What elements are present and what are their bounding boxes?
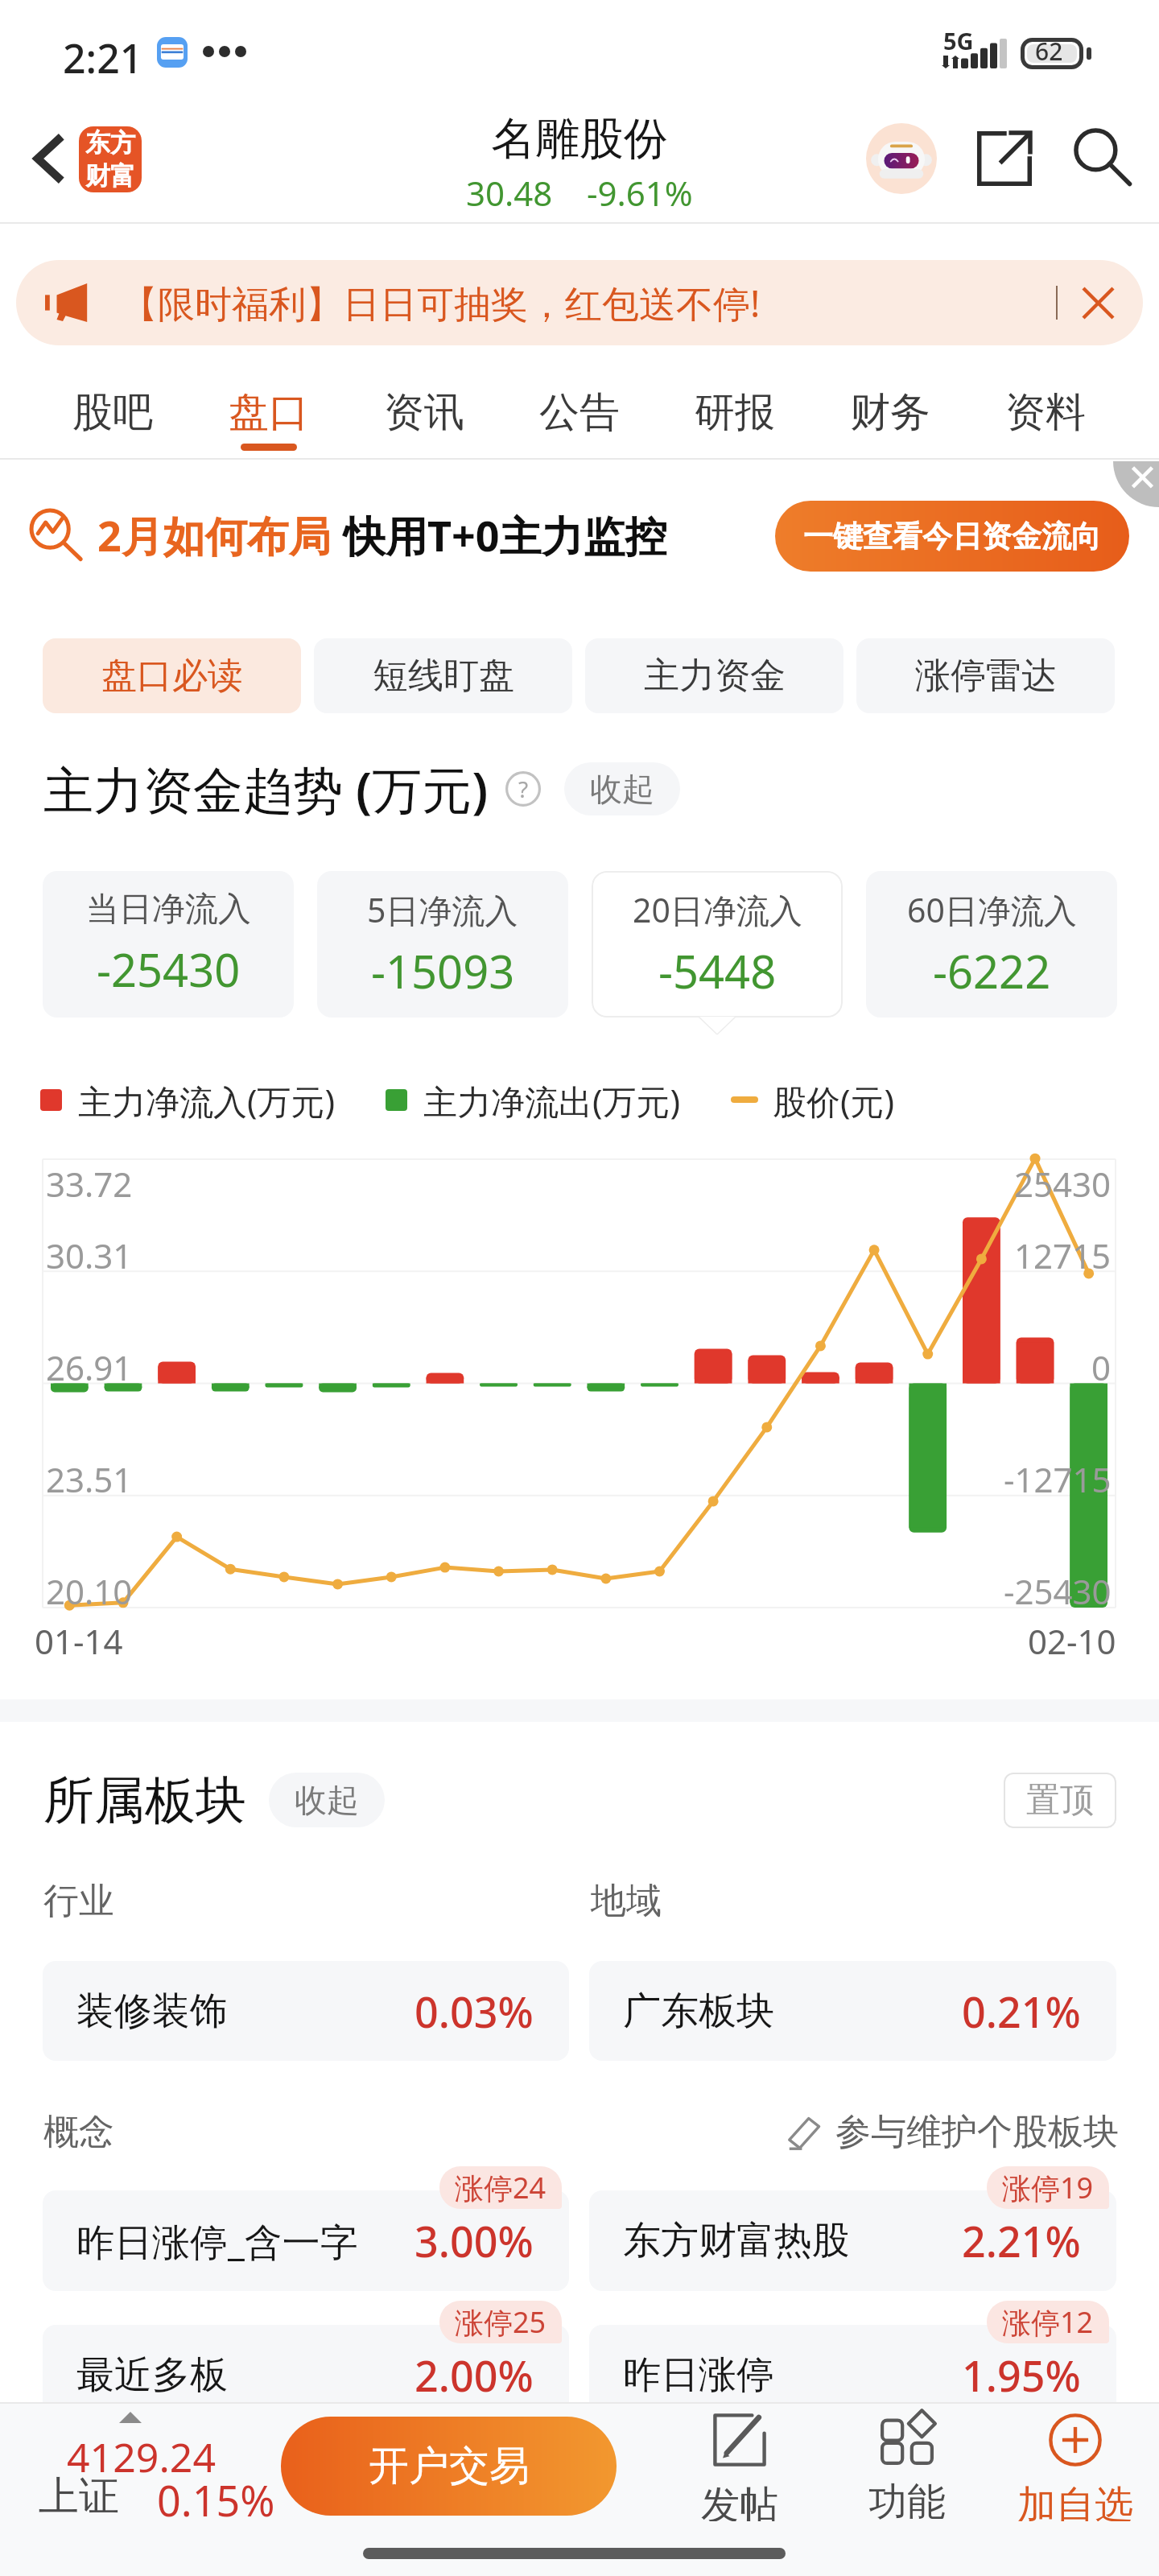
- button[interactable]: 盘口必读: [43, 638, 301, 713]
- staticText: 资料: [1005, 387, 1086, 438]
- button[interactable]: Close ad: [1113, 461, 1159, 507]
- button[interactable]: 置顶: [1004, 1773, 1116, 1828]
- staticText: 名雕股份: [491, 111, 668, 167]
- staticText: 30.31: [46, 1232, 133, 1278]
- button[interactable]: Search: [1063, 118, 1144, 198]
- staticText: 涨停19: [1002, 2168, 1094, 2207]
- staticText: 33.72: [46, 1161, 133, 1207]
- staticText: -15093: [371, 940, 515, 1001]
- staticText: 参与维护个股板块: [835, 2110, 1119, 2154]
- staticText: 概念: [43, 2110, 114, 2154]
- staticText: 装修装饰: [76, 1988, 228, 2035]
- button[interactable]: 开户交易: [281, 2417, 617, 2516]
- button[interactable]: 5日净流入: [317, 871, 568, 1018]
- button[interactable]: 股吧: [35, 360, 191, 460]
- button[interactable]: 一键查看今日资金流向: [775, 501, 1129, 572]
- button[interactable]: 资讯: [346, 360, 501, 460]
- staticText: 财富: [85, 160, 135, 192]
- button[interactable]: 发帖: [663, 2412, 816, 2521]
- staticText: 0.15%: [157, 2471, 275, 2529]
- staticText: 最近多板: [76, 2351, 228, 2399]
- staticText: 20.10: [46, 1568, 133, 1614]
- staticText: 02-10: [1028, 1618, 1116, 1664]
- staticText: 0.03%: [415, 1983, 534, 2040]
- button[interactable]: 【限时福利】日日可抽奖，红包送不停!: [16, 260, 1143, 345]
- staticText: 所属板块: [43, 1769, 246, 1832]
- button[interactable]: Share: [964, 118, 1045, 199]
- staticText: -9.61%: [587, 170, 693, 216]
- button[interactable]: 收起: [269, 1773, 385, 1827]
- staticText: 涨停雷达: [915, 654, 1057, 698]
- staticText: -5448: [658, 940, 777, 1001]
- staticText: 01-14: [35, 1618, 123, 1664]
- button[interactable]: 资料: [967, 360, 1123, 460]
- staticText: 4129.24: [67, 2429, 216, 2484]
- button[interactable]: 参与维护个股板块: [787, 2110, 1119, 2154]
- button[interactable]: East Money: [79, 126, 142, 192]
- staticText: -25430: [97, 939, 241, 1000]
- button[interactable]: 加自选: [999, 2412, 1152, 2521]
- staticText: 主力净流入(万元): [78, 1078, 336, 1121]
- staticText: 5G: [943, 25, 974, 56]
- staticText: 地域: [591, 1879, 662, 1923]
- staticText: 12715: [1014, 1232, 1112, 1278]
- button[interactable]: Close banner: [1074, 279, 1122, 327]
- staticText: 23.51: [46, 1456, 133, 1502]
- button[interactable]: 财务: [812, 360, 967, 460]
- staticText: 主力资金趋势 (万元): [43, 755, 489, 823]
- button[interactable]: 盘口: [191, 360, 346, 460]
- staticText: 涨停12: [1002, 2302, 1094, 2342]
- button[interactable]: 2月如何布局: [30, 497, 667, 572]
- staticText: 涨停25: [455, 2302, 547, 2342]
- staticText: 收起: [590, 769, 654, 809]
- button[interactable]: 涨停雷达: [856, 638, 1115, 713]
- staticText: 2.21%: [962, 2212, 1081, 2269]
- staticText: 公告: [539, 387, 620, 438]
- button[interactable]: 当日净流入: [43, 871, 294, 1018]
- staticText: 东方财富热股: [623, 2217, 850, 2264]
- staticText: 上证: [39, 2471, 119, 2522]
- button[interactable]: 主力资金: [585, 638, 843, 713]
- button[interactable]: 东方财富热股: [589, 2190, 1116, 2291]
- staticText: 股吧: [72, 387, 153, 438]
- staticText: 研报: [695, 387, 775, 438]
- button[interactable]: 研报: [657, 360, 812, 460]
- staticText: 涨停24: [455, 2168, 547, 2207]
- button[interactable]: 短线盯盘: [314, 638, 572, 713]
- staticText: 60日净流入: [907, 887, 1077, 932]
- staticText: 盘口必读: [101, 654, 243, 698]
- button[interactable]: 昨日涨停: [589, 2325, 1116, 2425]
- staticText: 26.91: [46, 1344, 133, 1390]
- button[interactable]: 功能: [831, 2412, 984, 2521]
- button[interactable]: 装修装饰: [43, 1961, 569, 2061]
- button[interactable]: 60日净流入: [866, 871, 1117, 1018]
- button[interactable]: 昨日涨停_含一字: [43, 2190, 569, 2291]
- staticText: 0: [1091, 1344, 1112, 1390]
- button[interactable]: Help: [503, 769, 543, 809]
- button[interactable]: 4129.24: [0, 2402, 274, 2531]
- button[interactable]: 最近多板: [43, 2325, 569, 2425]
- staticText: 3.00%: [415, 2212, 534, 2269]
- button[interactable]: Back: [13, 122, 85, 195]
- staticText: 资讯: [384, 387, 464, 438]
- staticText: 快用T+0主力监控: [344, 506, 667, 563]
- staticText: 当日净流入: [86, 889, 251, 931]
- staticText: 2.00%: [415, 2347, 534, 2404]
- staticText: 盘口: [229, 387, 309, 438]
- button[interactable]: AI assistant: [866, 123, 937, 194]
- staticText: 昨日涨停: [623, 2351, 774, 2399]
- staticText: 2月如何布局: [97, 506, 331, 563]
- button[interactable]: 公告: [501, 360, 657, 460]
- staticText: 加自选: [1017, 2481, 1133, 2521]
- staticText: ?: [518, 774, 529, 804]
- staticText: 发帖: [701, 2481, 778, 2521]
- button[interactable]: 广东板块: [589, 1961, 1116, 2061]
- button[interactable]: 收起: [564, 762, 680, 815]
- staticText: 62: [1035, 35, 1063, 66]
- staticText: 股价(元): [773, 1078, 895, 1121]
- staticText: 广东板块: [623, 1988, 774, 2035]
- staticText: 【限时福利】日日可抽奖，红包送不停!: [121, 278, 761, 328]
- staticText: 财务: [850, 387, 930, 438]
- button[interactable]: 20日净流入: [592, 871, 843, 1018]
- staticText: 20日净流入: [633, 887, 802, 932]
